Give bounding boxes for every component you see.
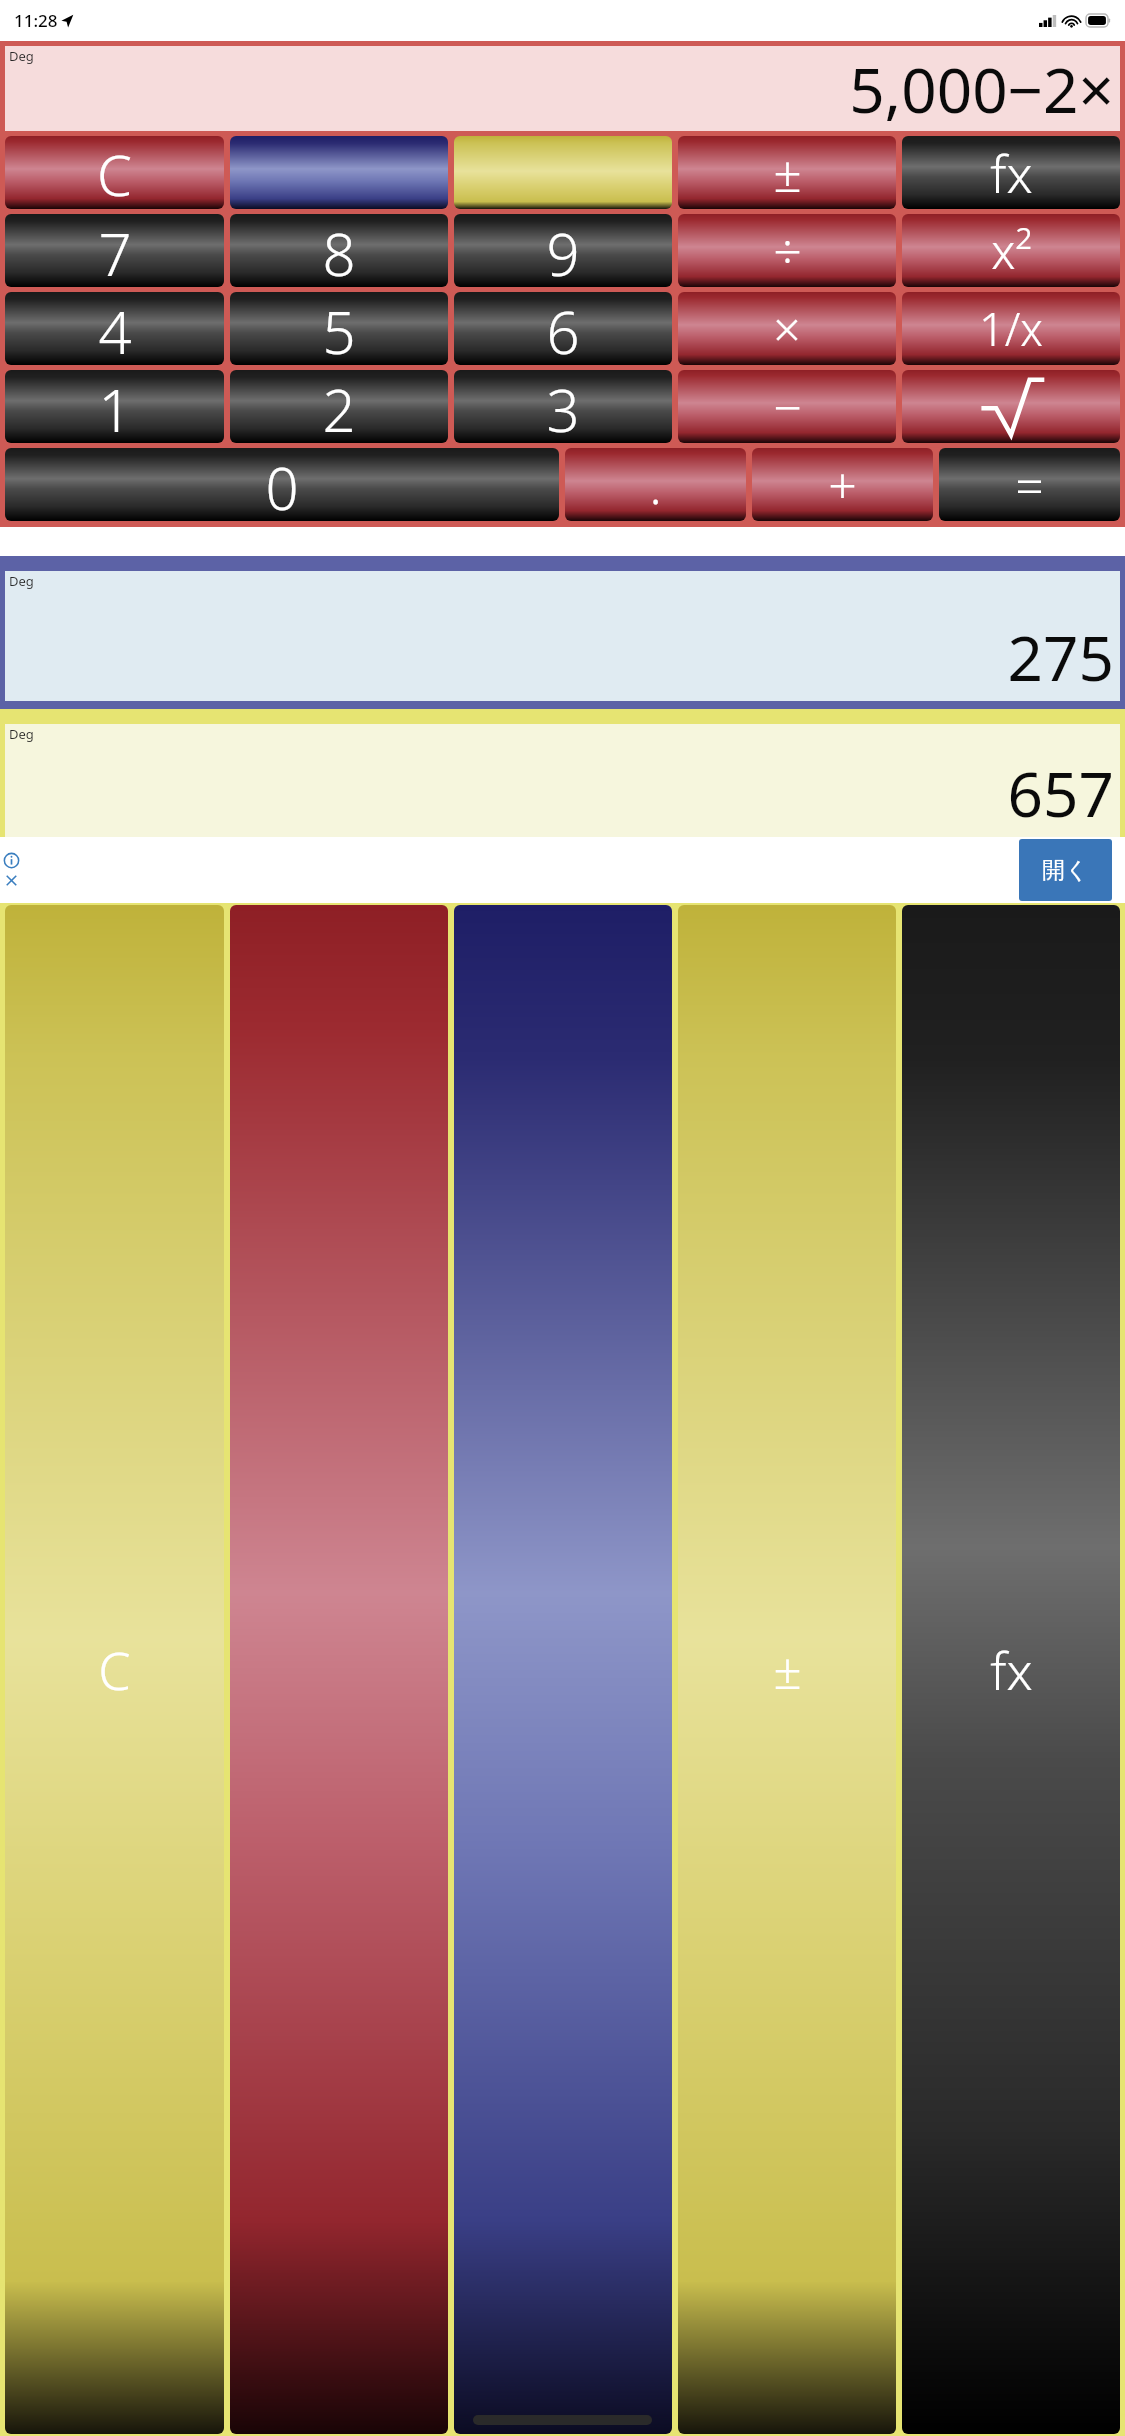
staticText: . <box>649 451 662 519</box>
button[interactable]: Square root <box>902 370 1120 443</box>
button[interactable]: − <box>678 370 896 443</box>
button[interactable]: Ad info <box>0 837 1125 903</box>
staticText: ± <box>773 1636 802 1704</box>
button[interactable]: Ad info <box>3 852 20 869</box>
button[interactable]: C <box>5 905 224 2434</box>
button[interactable]: Blue calculator <box>230 136 448 209</box>
staticText: C <box>97 136 132 209</box>
staticText: + <box>828 451 857 519</box>
staticText: C <box>98 1634 131 1705</box>
staticText: fx <box>990 1634 1033 1705</box>
button[interactable]: x² <box>902 214 1120 287</box>
button[interactable]: 3 <box>454 370 672 443</box>
staticText: 1/x <box>979 298 1043 359</box>
button[interactable]: 7 <box>5 214 224 287</box>
button[interactable]: 開く <box>1019 839 1112 901</box>
staticText: = <box>1015 451 1044 519</box>
staticText: ± <box>773 139 802 207</box>
staticText: Deg <box>9 725 34 743</box>
button[interactable]: 9 <box>454 214 672 287</box>
button[interactable]: fx <box>902 905 1120 2434</box>
staticText: 6 <box>546 292 580 365</box>
staticText: 1 <box>98 370 132 443</box>
button[interactable]: 5 <box>230 292 448 365</box>
button[interactable]: = <box>939 448 1120 521</box>
button[interactable]: + <box>752 448 933 521</box>
button[interactable]: 8 <box>230 214 448 287</box>
staticText: 275 <box>1007 615 1114 699</box>
staticText: fx <box>990 137 1033 208</box>
staticText: 7 <box>98 214 132 287</box>
button[interactable]: Close ad <box>3 872 20 889</box>
staticText: 5 <box>322 292 356 365</box>
button[interactable]: 1 <box>5 370 224 443</box>
button[interactable]: × <box>678 292 896 365</box>
staticText: 2 <box>322 370 356 443</box>
staticText: 開く <box>1042 856 1089 885</box>
button[interactable]: C <box>5 136 224 209</box>
staticText: − <box>773 373 802 441</box>
button[interactable]: Yellow calculator <box>454 136 672 209</box>
button[interactable]: ± <box>678 136 896 209</box>
staticText: Deg <box>9 572 34 590</box>
button[interactable]: ± <box>678 905 896 2434</box>
button[interactable]: 1/x <box>902 292 1120 365</box>
staticText: 0 <box>265 448 299 521</box>
staticText: 5,000−2× <box>849 47 1114 131</box>
staticText: ÷ <box>773 217 802 285</box>
button[interactable]: 4 <box>5 292 224 365</box>
button[interactable]: ÷ <box>678 214 896 287</box>
staticText: 8 <box>322 214 356 287</box>
button[interactable]: . <box>565 448 746 521</box>
staticText: 657 <box>1007 751 1114 835</box>
button[interactable]: Blue calculator <box>454 905 672 2434</box>
staticText: 9 <box>546 214 580 287</box>
staticText: 3 <box>546 370 580 443</box>
staticText: 4 <box>98 292 132 365</box>
button[interactable]: 0 <box>5 448 559 521</box>
button[interactable]: fx <box>902 136 1120 209</box>
button[interactable]: 6 <box>454 292 672 365</box>
button[interactable]: Red calculator <box>230 905 448 2434</box>
staticText: Deg <box>9 47 34 65</box>
staticText: × <box>773 296 801 361</box>
staticText: x² <box>991 218 1032 283</box>
staticText: 11:28 <box>14 9 58 32</box>
button[interactable]: 2 <box>230 370 448 443</box>
